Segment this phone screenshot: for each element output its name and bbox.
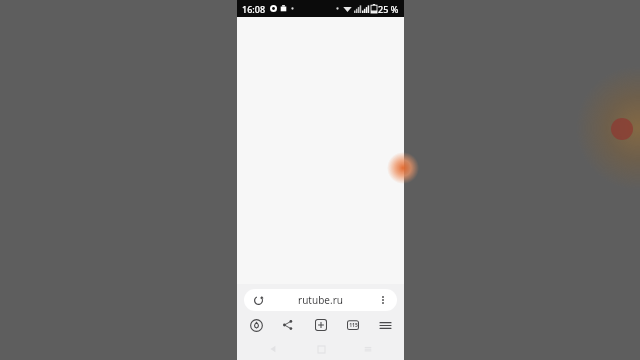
button[interactable]: New tab (310, 314, 332, 336)
button[interactable]: Tabs, 115 open (342, 314, 364, 336)
staticText: 115 (349, 322, 358, 329)
staticText: 25 % (378, 3, 399, 15)
button[interactable]: Home (245, 314, 267, 336)
button[interactable]: Reload (251, 293, 265, 307)
button[interactable]: Share (277, 314, 299, 336)
staticText: 16:08 (242, 3, 266, 15)
staticText: rutube.ru (265, 293, 376, 307)
button[interactable]: Menu (374, 314, 396, 336)
button[interactable]: Reload (244, 289, 397, 311)
button[interactable]: More options (376, 293, 390, 307)
